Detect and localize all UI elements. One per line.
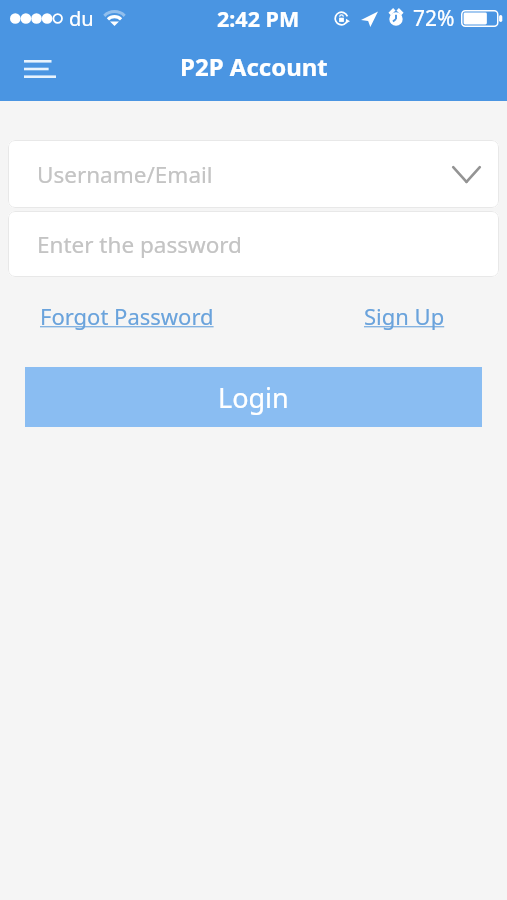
button[interactable]: Login — [25, 367, 482, 427]
button[interactable]: Forgot Password — [34, 293, 220, 339]
staticText: Enter the password — [37, 229, 242, 260]
button[interactable]: Menu — [12, 41, 68, 97]
staticText: 2:42 PM — [217, 4, 300, 33]
button[interactable]: Enter the password — [8, 211, 499, 277]
staticText: Username/Email — [37, 159, 213, 190]
staticText: P2P Account — [180, 50, 328, 83]
staticText: Forgot Password — [40, 301, 214, 331]
staticText: Sign Up — [364, 301, 445, 331]
button[interactable]: Username/Email — [8, 140, 499, 208]
button[interactable]: Sign Up — [358, 293, 451, 339]
staticText: Login — [218, 379, 289, 416]
staticText: du — [69, 5, 94, 32]
button[interactable]: Expand — [444, 152, 488, 196]
staticText: 72% — [413, 4, 455, 33]
